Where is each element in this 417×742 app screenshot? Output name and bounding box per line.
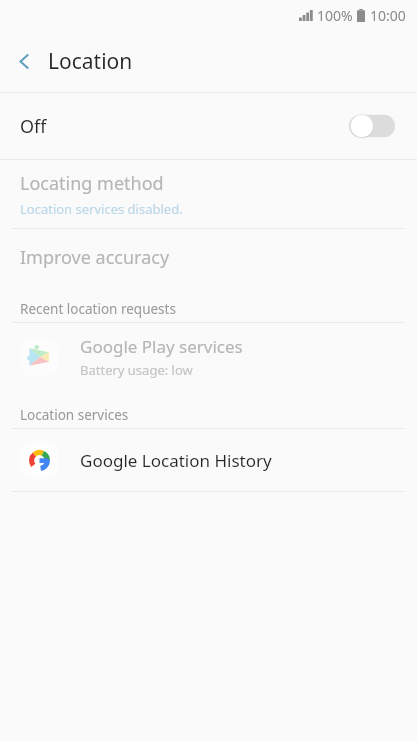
- staticText: Google Location History: [80, 449, 272, 472]
- button[interactable]: Improve accuracy: [0, 229, 417, 285]
- staticText: 10:00: [370, 6, 406, 25]
- staticText: Recent location requests: [20, 300, 176, 318]
- button[interactable]: Off: [0, 93, 417, 159]
- staticText: Location: [48, 47, 133, 76]
- button[interactable]: Google Play services: [0, 323, 417, 391]
- staticText: Google Play services: [80, 335, 243, 358]
- button[interactable]: Google Location History: [0, 429, 417, 491]
- button[interactable]: Back: [0, 30, 48, 92]
- staticText: Locating method: [20, 171, 164, 196]
- staticText: Battery usage: low: [80, 361, 193, 379]
- staticText: Location services: [20, 406, 129, 424]
- staticText: 100%: [317, 6, 353, 25]
- staticText: Off: [20, 114, 47, 139]
- button[interactable]: Locating method: [0, 160, 417, 228]
- staticText: Improve accuracy: [20, 245, 170, 270]
- staticText: Location services disabled.: [20, 200, 183, 218]
